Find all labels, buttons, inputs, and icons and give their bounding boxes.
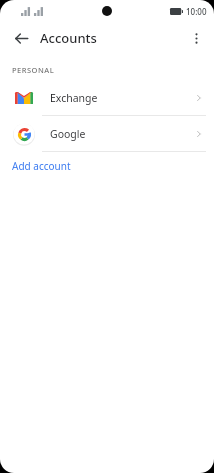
button[interactable]: Back xyxy=(8,25,34,51)
button[interactable]: Exchange xyxy=(0,80,214,115)
staticText: 10:00 xyxy=(186,6,207,17)
button[interactable]: Google xyxy=(0,116,214,151)
staticText: Exchange xyxy=(50,91,194,105)
button[interactable]: Add account xyxy=(0,152,214,180)
staticText: PERSONAL xyxy=(12,65,55,75)
staticText: Accounts xyxy=(40,29,97,47)
button[interactable]: More options xyxy=(183,25,209,51)
staticText: Add account xyxy=(12,159,71,173)
staticText: Google xyxy=(50,127,194,141)
